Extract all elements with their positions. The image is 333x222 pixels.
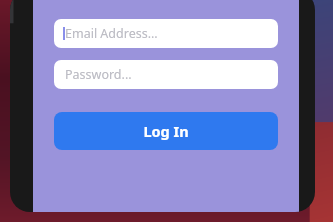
button[interactable]: Log In: [54, 112, 278, 150]
staticText: Password...: [65, 66, 132, 83]
button[interactable]: Email Address text field: [54, 19, 278, 48]
staticText: Email Address...: [65, 25, 158, 42]
staticText: Log In: [143, 121, 189, 141]
button[interactable]: Password text field: [54, 60, 278, 89]
